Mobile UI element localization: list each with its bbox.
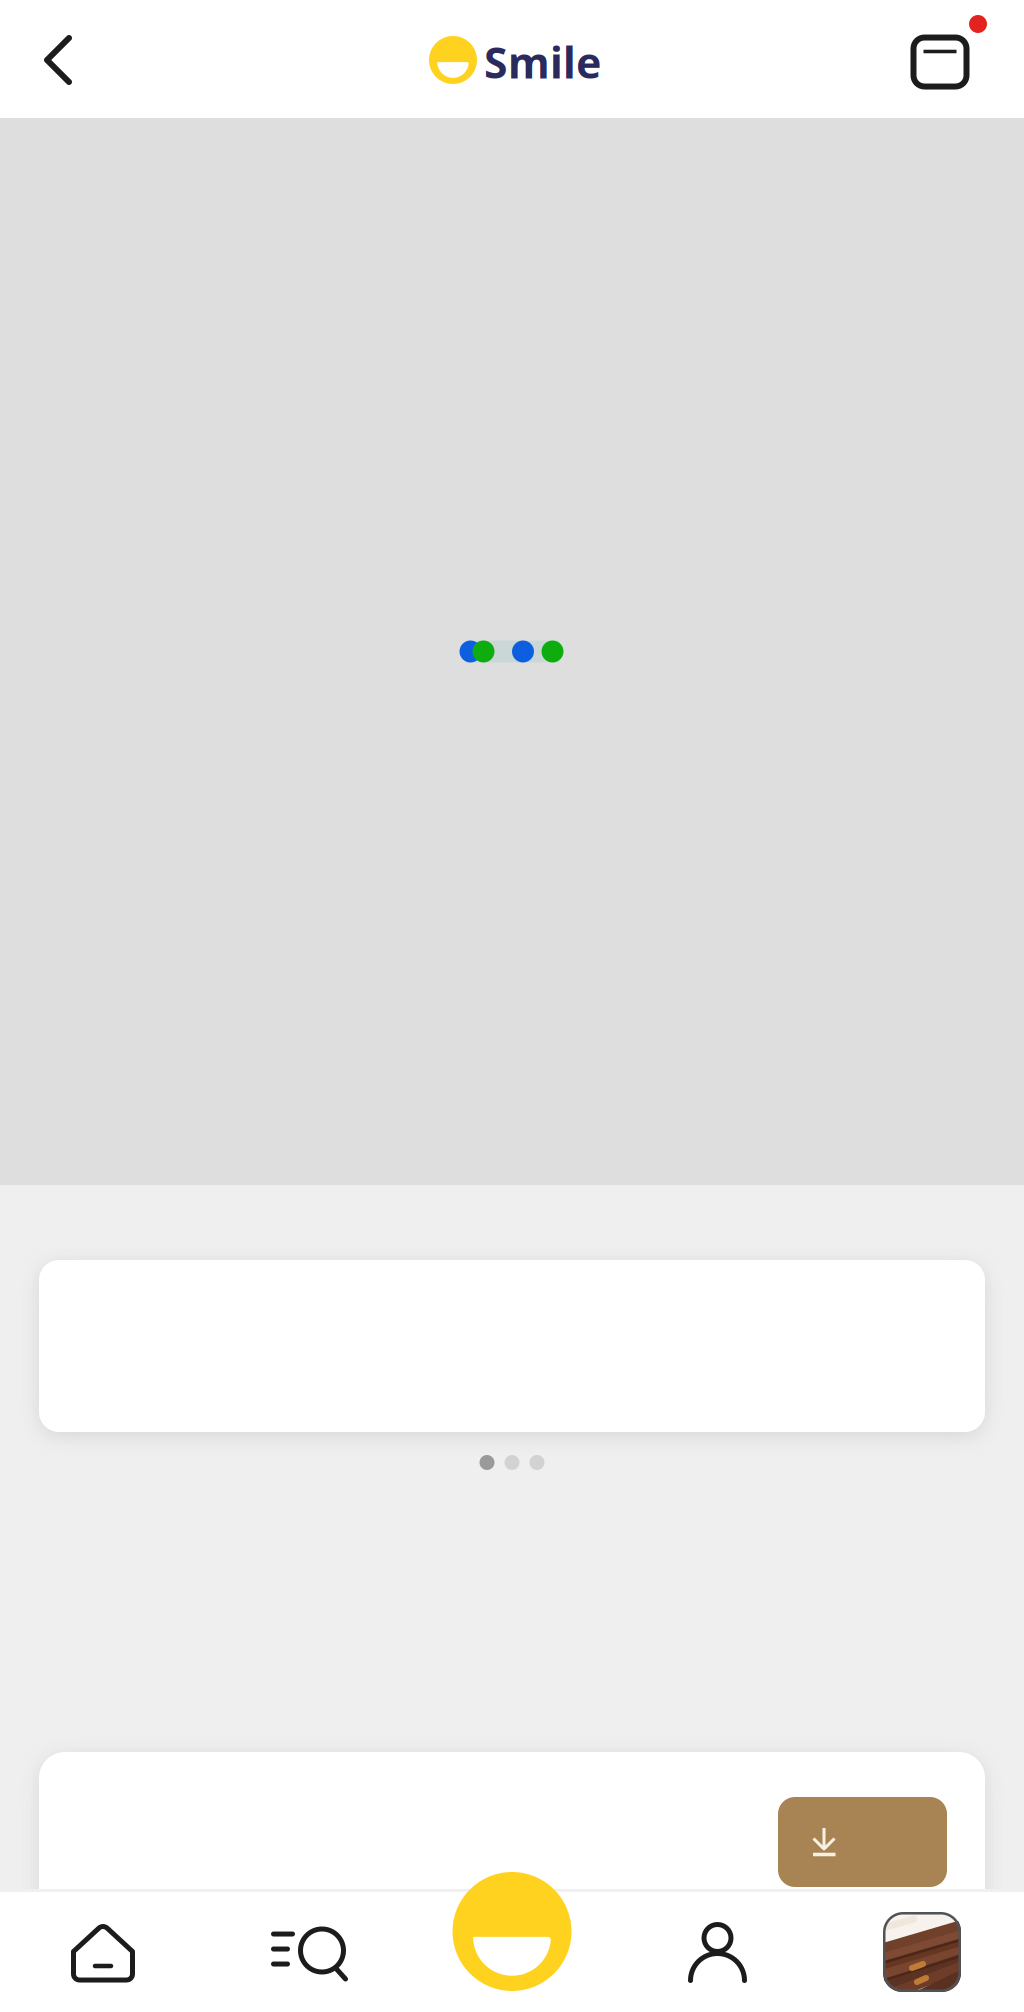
button[interactable]: Search	[204, 1892, 409, 2012]
button[interactable]: Smile	[409, 1892, 615, 2012]
staticText: Smile	[484, 34, 601, 90]
button[interactable]: Recently viewed	[820, 1892, 1024, 2012]
button[interactable]: Back	[0, 0, 116, 118]
button[interactable]: Account	[615, 1892, 820, 2012]
button[interactable]: Home	[0, 1892, 204, 2012]
button[interactable]: Smile	[452, 1872, 571, 1991]
button[interactable]: Notifications	[916, 0, 1024, 118]
button[interactable]: Download	[778, 1797, 947, 1887]
